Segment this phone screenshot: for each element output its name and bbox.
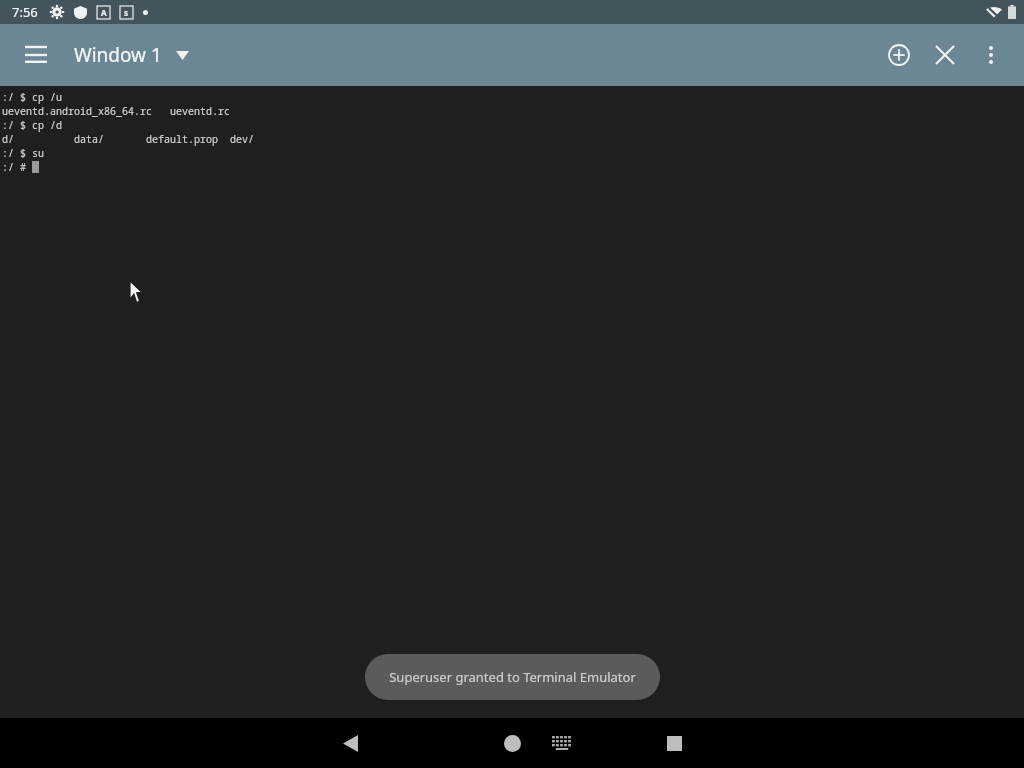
button[interactable]: Back (330, 723, 370, 763)
button[interactable]: Show keyboard (542, 723, 582, 763)
staticText: A (101, 7, 107, 18)
button[interactable]: Window 1 (74, 42, 189, 68)
staticText: Superuser granted to Terminal Emulator (389, 668, 636, 686)
button[interactable]: Recent apps (654, 723, 694, 763)
staticText: s (124, 7, 129, 18)
staticText: Window 1 (74, 42, 162, 68)
staticText: :/ $ su (2, 146, 44, 160)
staticText: :/ $ cp /u (2, 90, 62, 104)
button[interactable]: New window (876, 32, 922, 78)
button[interactable]: Home (492, 723, 532, 763)
button[interactable]: Open navigation menu (14, 33, 58, 77)
staticText: :/ # (2, 160, 32, 174)
staticText: 7:56 (12, 3, 38, 21)
staticText: d/ data/ default.prop dev/ (2, 132, 254, 146)
staticText: ueventd.android_x86_64.rc ueventd.rc (2, 104, 230, 118)
staticText: :/ $ cp /d (2, 118, 62, 132)
button[interactable]: More options (968, 32, 1014, 78)
button[interactable]: Close window (922, 32, 968, 78)
